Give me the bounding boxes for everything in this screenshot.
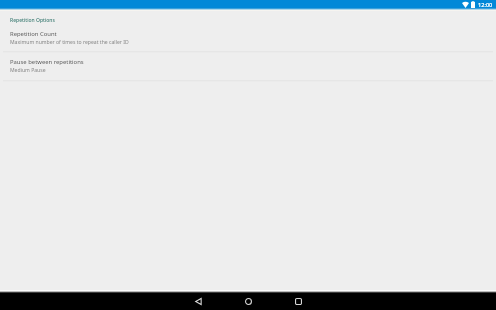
other: Wi-Fi signal [462,1,469,8]
staticText: Maximum number of times to repeat the ca… [10,39,129,46]
button[interactable]: Recent apps [289,293,308,310]
staticText: Repetition Options [10,17,55,24]
staticText: Medium Pause [10,67,46,74]
button[interactable]: Repetition Count [0,28,496,53]
staticText: Repetition Count [10,30,57,38]
button[interactable]: Back [189,293,208,310]
button[interactable]: Home [239,293,258,310]
other: Battery [471,1,475,8]
staticText: 12:00 [478,1,493,9]
staticText: Pause between repetitions [10,58,84,66]
button[interactable]: Pause between repetitions [0,56,496,81]
